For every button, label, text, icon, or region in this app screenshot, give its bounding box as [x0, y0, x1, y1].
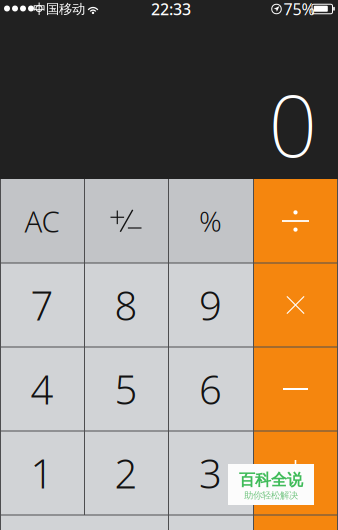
staticText: 助你轻松解决 — [244, 490, 298, 501]
button[interactable]: Minus — [253, 347, 338, 431]
button[interactable]: 6 — [168, 347, 253, 431]
staticText: 0 — [268, 67, 317, 181]
button[interactable]: Divide — [253, 179, 338, 263]
button[interactable]: Equals — [253, 515, 338, 530]
staticText: 中国移动 — [33, 1, 85, 17]
staticText: 22:33 — [151, 0, 191, 20]
staticText: 6 — [199, 362, 222, 415]
button[interactable]: 2 — [84, 431, 168, 515]
button[interactable]: Multiply — [253, 263, 338, 347]
staticText: 2 — [114, 446, 137, 499]
button[interactable]: Plus — [253, 431, 338, 515]
button[interactable]: 5 — [84, 347, 168, 431]
button[interactable]: Zero — [0, 515, 168, 530]
button[interactable]: Percent — [168, 179, 253, 263]
staticText: 7 — [30, 278, 53, 331]
button[interactable]: Decimal point — [168, 515, 253, 530]
staticText: 百科全说 — [239, 470, 303, 490]
staticText: AC — [24, 201, 59, 240]
staticText: 5 — [114, 362, 137, 415]
staticText: 9 — [199, 278, 222, 331]
button[interactable]: 1 — [0, 431, 84, 515]
button[interactable]: 7 — [0, 263, 84, 347]
button[interactable]: 3 — [168, 431, 253, 515]
staticText: 8 — [114, 278, 137, 331]
staticText: 3 — [199, 446, 222, 499]
staticText: 75% — [283, 0, 314, 20]
staticText: 4 — [30, 362, 53, 415]
button[interactable]: 9 — [168, 263, 253, 347]
button[interactable]: All clear — [0, 179, 84, 263]
staticText: % — [199, 202, 222, 240]
button[interactable]: 4 — [0, 347, 84, 431]
staticText: 1 — [30, 446, 53, 499]
button[interactable]: Plus minus — [84, 179, 168, 263]
button[interactable]: 8 — [84, 263, 168, 347]
